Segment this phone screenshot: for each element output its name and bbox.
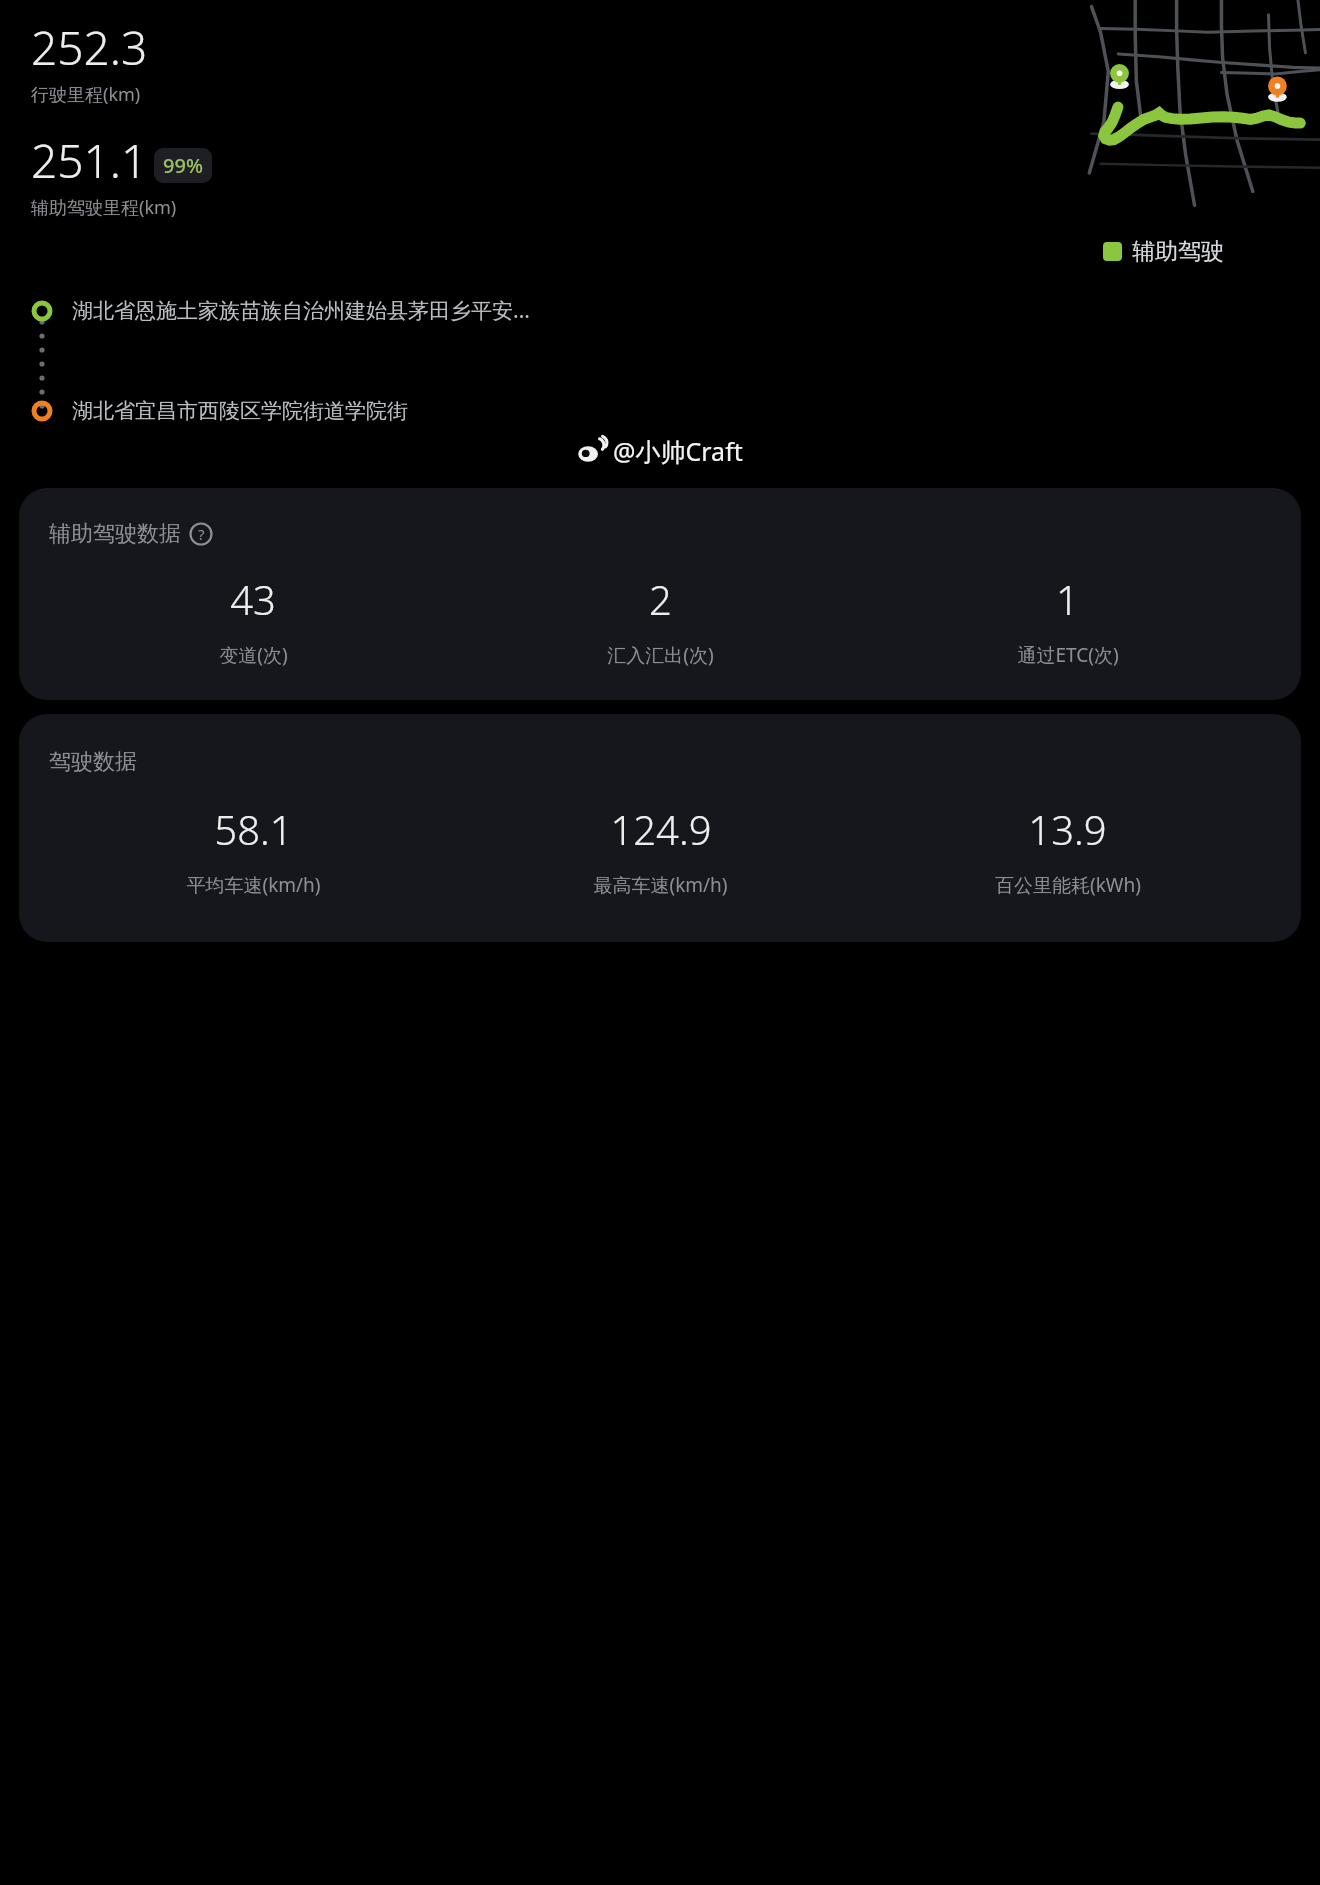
staticText: 辅助驾驶 [1132, 237, 1224, 266]
staticText: 百公里能耗(kWh) [995, 872, 1141, 898]
staticText: 辅助驾驶里程(km) [31, 195, 177, 220]
staticText: 行驶里程(km) [31, 82, 141, 107]
button[interactable]: 驾驶数据 [19, 714, 1301, 942]
staticText: 最高车速(km/h) [593, 872, 728, 898]
staticText: 99% [163, 152, 203, 179]
button[interactable]: 关于辅助驾驶数据 [189, 522, 213, 546]
staticText: 1 [1056, 572, 1079, 626]
staticText: 13.9 [1028, 802, 1107, 856]
staticText: 58.1 [214, 802, 293, 856]
staticText: 252.3 [31, 16, 148, 79]
staticText: 变道(次) [219, 642, 288, 668]
staticText: 251.1 [31, 129, 148, 192]
staticText: 平均车速(km/h) [186, 872, 321, 898]
staticText: 汇入汇出(次) [607, 642, 714, 668]
staticText: 湖北省恩施土家族苗族自治州建始县茅田乡平安... [72, 296, 530, 325]
staticText: 湖北省宜昌市西陵区学院街道学院街 [72, 398, 408, 424]
staticText: 124.9 [610, 802, 712, 856]
staticText: 驾驶数据 [49, 748, 137, 776]
staticText: 辅助驾驶数据 [49, 520, 181, 548]
staticText: 43 [230, 572, 276, 626]
staticText: 通过ETC(次) [1017, 642, 1119, 668]
staticText: ? [198, 524, 205, 544]
staticText: 2 [649, 572, 672, 626]
button[interactable]: 辅助驾驶数据 [19, 488, 1301, 700]
staticText: @小帅Craft [613, 434, 743, 468]
